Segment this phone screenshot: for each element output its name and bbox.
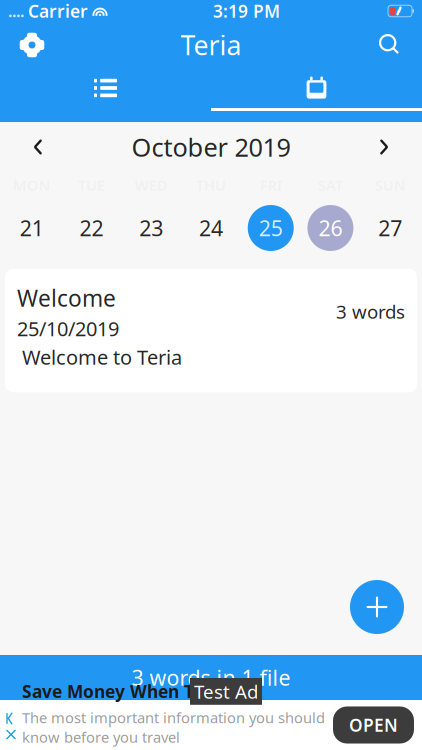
staticText: 25 bbox=[259, 214, 283, 242]
staticText: Test Ad bbox=[194, 679, 258, 704]
button[interactable]: List view bbox=[0, 68, 211, 108]
staticText: Save Money When Travel bbox=[22, 680, 235, 703]
button[interactable]: Settings bbox=[9, 23, 55, 67]
staticText: 3:19 PM bbox=[213, 0, 280, 22]
staticText: 3 words in 1 file bbox=[131, 663, 290, 692]
staticText: 24 bbox=[199, 214, 223, 242]
staticText: Welcome bbox=[17, 283, 116, 313]
button[interactable]: Save Money When Travel bbox=[0, 700, 422, 750]
button[interactable]: Search bbox=[367, 23, 413, 67]
staticText: Welcome to Teria bbox=[17, 344, 182, 370]
button[interactable]: THU bbox=[181, 177, 241, 251]
button[interactable]: SAT bbox=[301, 177, 360, 251]
staticText: 22 bbox=[80, 214, 104, 242]
staticText: 25/10/2019 bbox=[17, 315, 119, 342]
button[interactable]: WED bbox=[121, 177, 181, 251]
button[interactable]: Welcome bbox=[5, 269, 417, 392]
staticText: 27 bbox=[378, 214, 402, 242]
staticText: 23 bbox=[139, 214, 163, 242]
button[interactable]: Next month bbox=[358, 127, 410, 167]
staticText: 21 bbox=[20, 214, 44, 242]
staticText: 26 bbox=[318, 214, 342, 242]
button[interactable]: FRI bbox=[241, 177, 301, 251]
staticText: Carrier bbox=[28, 0, 88, 22]
button[interactable]: New note bbox=[350, 580, 404, 634]
button[interactable]: MON bbox=[2, 177, 62, 251]
button[interactable]: Calendar view bbox=[211, 68, 422, 108]
staticText: October 2019 bbox=[131, 130, 290, 164]
staticText: Teria bbox=[180, 27, 241, 63]
button[interactable]: SUN bbox=[360, 177, 420, 251]
staticText: OPEN bbox=[349, 713, 398, 736]
button[interactable]: Previous month bbox=[12, 127, 64, 167]
staticText: 3 words bbox=[336, 299, 405, 324]
staticText: .... bbox=[8, 0, 24, 22]
button[interactable]: TUE bbox=[62, 177, 121, 251]
staticText: The most important information you shoul… bbox=[22, 708, 325, 747]
